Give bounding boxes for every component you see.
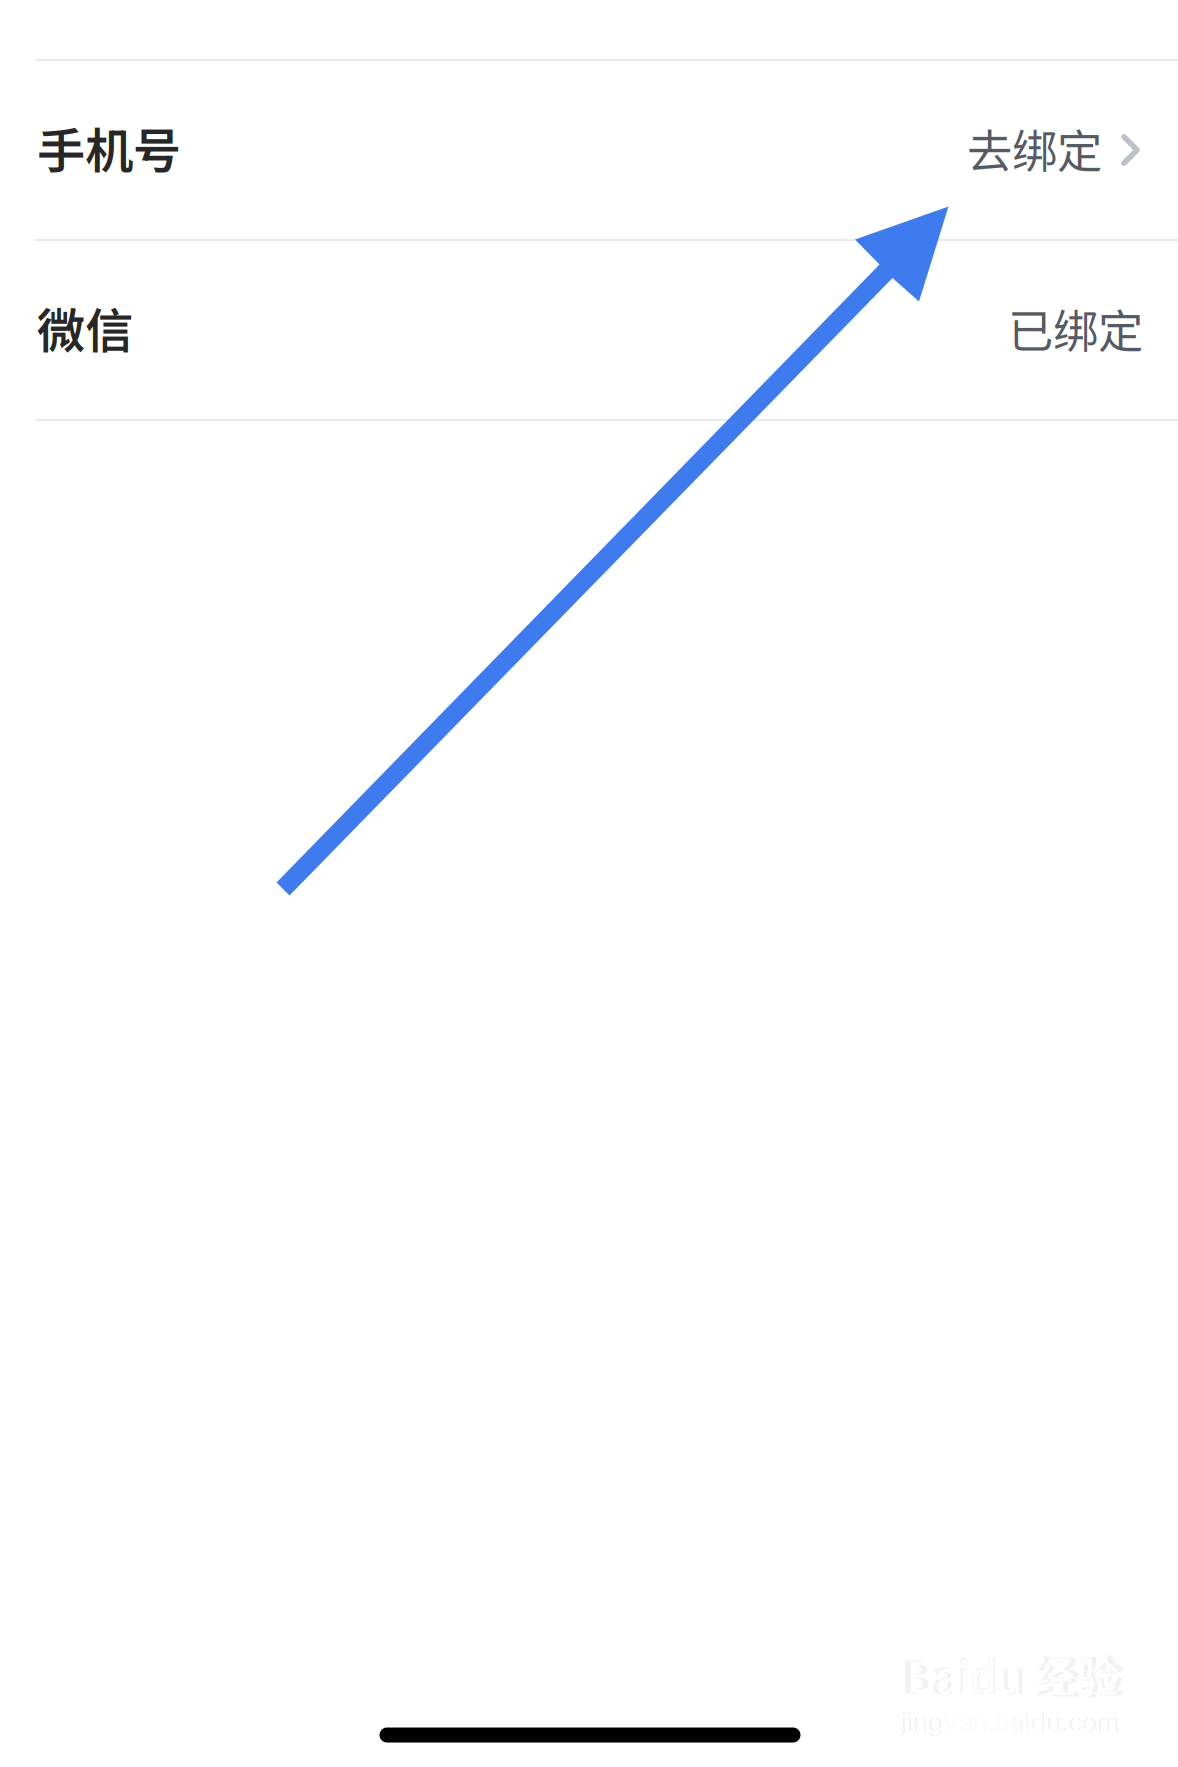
staticText: 已绑定 xyxy=(1008,296,1143,361)
staticText: 微信 xyxy=(37,293,133,362)
staticText: 手机号 xyxy=(37,113,181,182)
staticText: jingyan.baidu.com xyxy=(903,1706,1117,1737)
staticText: Baidu 经验 xyxy=(906,1643,1118,1705)
button[interactable]: 微信 xyxy=(0,241,1178,419)
button[interactable]: 手机号 xyxy=(0,61,1178,239)
staticText: 去绑定 xyxy=(967,116,1102,181)
staticText: jingyan.baidu.com xyxy=(901,1706,1119,1738)
staticText: Baidu 经验 xyxy=(901,1642,1124,1706)
